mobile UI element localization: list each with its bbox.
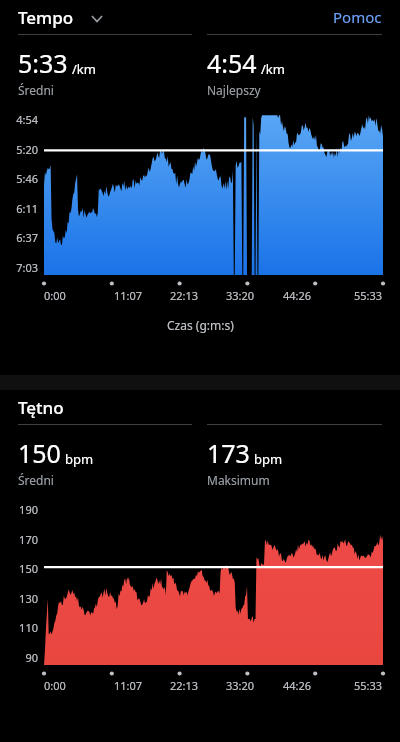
- staticText: 110: [19, 620, 38, 635]
- staticText: 22:13: [170, 678, 199, 693]
- staticText: 170: [19, 532, 38, 547]
- staticText: 90: [25, 650, 38, 665]
- staticText: 7:03: [16, 260, 38, 275]
- button[interactable]: Pomoc: [333, 7, 382, 27]
- staticText: 4:54: [207, 46, 257, 80]
- staticText: 44:26: [283, 678, 312, 693]
- staticText: Czas (g:m:s): [167, 317, 234, 333]
- staticText: Średni: [18, 472, 54, 488]
- button[interactable]: Tempo: [18, 6, 106, 29]
- staticText: 5:20: [16, 142, 38, 157]
- staticText: 11:07: [114, 678, 143, 693]
- button[interactable]: 5:33: [18, 34, 192, 98]
- staticText: 55:33: [354, 678, 383, 693]
- staticText: 5:46: [16, 171, 38, 186]
- staticText: Maksimum: [207, 472, 270, 488]
- staticText: /km: [72, 60, 96, 78]
- staticText: 6:11: [16, 201, 38, 216]
- staticText: Najlepszy: [207, 82, 261, 98]
- staticText: bpm: [254, 450, 283, 468]
- staticText: 33:20: [226, 288, 255, 303]
- button[interactable]: 150: [18, 424, 192, 488]
- button[interactable]: 173: [207, 424, 382, 488]
- staticText: 11:07: [114, 288, 143, 303]
- staticText: Tempo: [18, 6, 74, 29]
- button[interactable]: 4:54: [207, 34, 382, 98]
- staticText: 6:37: [16, 230, 38, 245]
- staticText: 55:33: [354, 288, 383, 303]
- staticText: 150: [18, 436, 61, 470]
- staticText: 4:54: [16, 112, 38, 127]
- staticText: 130: [19, 591, 38, 606]
- staticText: 44:26: [283, 288, 312, 303]
- button[interactable]: Tętno: [18, 396, 64, 419]
- staticText: 150: [19, 561, 38, 576]
- other: Expand: [88, 9, 106, 27]
- staticText: 0:00: [44, 678, 66, 693]
- staticText: bpm: [65, 450, 94, 468]
- staticText: 22:13: [170, 288, 199, 303]
- staticText: 33:20: [226, 678, 255, 693]
- staticText: 190: [19, 502, 38, 517]
- staticText: /km: [261, 60, 285, 78]
- staticText: Tętno: [18, 396, 64, 419]
- staticText: 0:00: [44, 288, 66, 303]
- staticText: 5:33: [18, 46, 68, 80]
- staticText: Średni: [18, 82, 54, 98]
- staticText: Pomoc: [333, 7, 382, 27]
- staticText: 173: [207, 436, 250, 470]
